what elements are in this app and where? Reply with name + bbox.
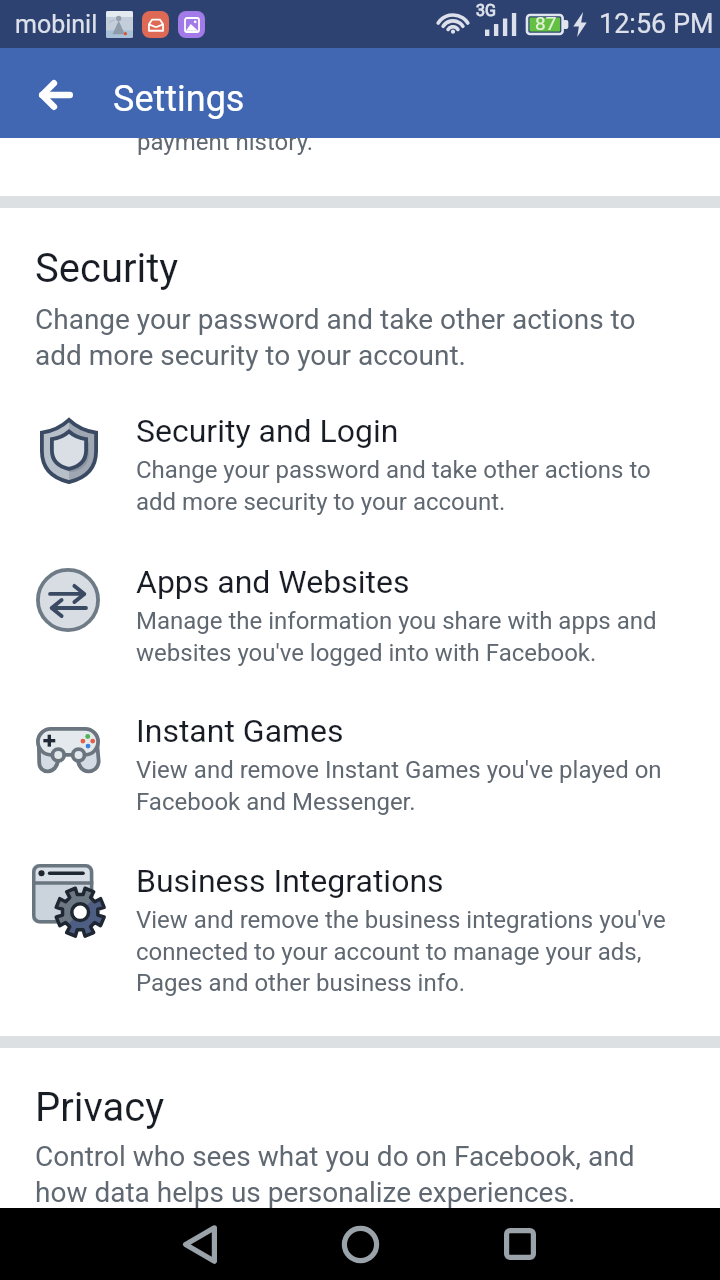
- button[interactable]: Back: [0, 48, 112, 138]
- button[interactable]: Home: [300, 1208, 420, 1280]
- staticText: View and remove the business integration…: [136, 906, 666, 996]
- staticText: Security and Login: [136, 412, 399, 450]
- staticText: Security: [35, 245, 179, 292]
- staticText: Manage the information you share with ap…: [136, 607, 657, 666]
- staticText: Settings: [113, 78, 245, 120]
- button[interactable]: Back: [140, 1208, 260, 1280]
- staticText: mobinil: [15, 10, 98, 39]
- button[interactable]: Instant Games: [0, 699, 720, 849]
- button[interactable]: Apps and Websites: [0, 550, 720, 700]
- staticText: Change your password and take other acti…: [136, 456, 651, 515]
- staticText: Instant Games: [136, 712, 344, 750]
- staticText: payment history.: [137, 128, 314, 156]
- button[interactable]: Business Integrations: [0, 849, 720, 999]
- staticText: Apps and Websites: [136, 563, 410, 601]
- staticText: Privacy: [35, 1084, 165, 1131]
- staticText: 3G: [476, 1, 496, 20]
- staticText: Business Integrations: [136, 862, 444, 900]
- staticText: 12:56 PM: [599, 8, 714, 40]
- button[interactable]: Security and Login: [0, 399, 720, 549]
- button[interactable]: Recent apps: [460, 1208, 580, 1280]
- staticText: Change your password and take other acti…: [35, 303, 636, 371]
- staticText: Control who sees what you do on Facebook…: [35, 1140, 635, 1208]
- staticText: View and remove Instant Games you've pla…: [136, 756, 662, 815]
- staticText: 87: [535, 12, 557, 34]
